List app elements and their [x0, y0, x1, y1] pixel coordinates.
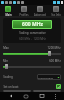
- button[interactable]: Home: [21, 92, 31, 100]
- button[interactable]: Apply: [33, 90, 61, 92]
- staticText: Sys Info: [51, 13, 61, 16]
- button[interactable]: Sys Info: [48, 5, 64, 16]
- staticText: 600 MHz: [22, 21, 43, 28]
- staticText: Scaling: [3, 75, 13, 79]
- staticText: 600 MHz - 1200 MHz: [19, 37, 46, 41]
- button[interactable]: [3, 64, 61, 69]
- staticText: 1200 MHz: [47, 46, 61, 50]
- staticText: Advanced: [34, 13, 46, 16]
- staticText: Min: [3, 59, 8, 63]
- staticText: conservative: [38, 76, 53, 79]
- button[interactable]: More options: [52, 92, 58, 100]
- button[interactable]: Main: [0, 5, 16, 16]
- staticText: Profiles: [19, 13, 29, 16]
- staticText: Scaling: conservative: [19, 31, 46, 35]
- button[interactable]: Back: [6, 92, 16, 100]
- button[interactable]: Set on boot: [3, 83, 61, 90]
- button[interactable]: Benchmark: [3, 90, 31, 92]
- staticText: 600 MHz: [49, 59, 61, 63]
- button[interactable]: [3, 51, 61, 56]
- button[interactable]: Profiles: [16, 5, 32, 16]
- staticText: Set on boot: [3, 85, 19, 89]
- button[interactable]: Advanced: [32, 5, 48, 16]
- button[interactable]: 600 MHz: [12, 20, 52, 29]
- button[interactable]: Recent apps: [37, 92, 47, 100]
- staticText: Max: [3, 46, 9, 50]
- button[interactable]: Scaling: [3, 73, 61, 80]
- staticText: Main: [5, 13, 12, 16]
